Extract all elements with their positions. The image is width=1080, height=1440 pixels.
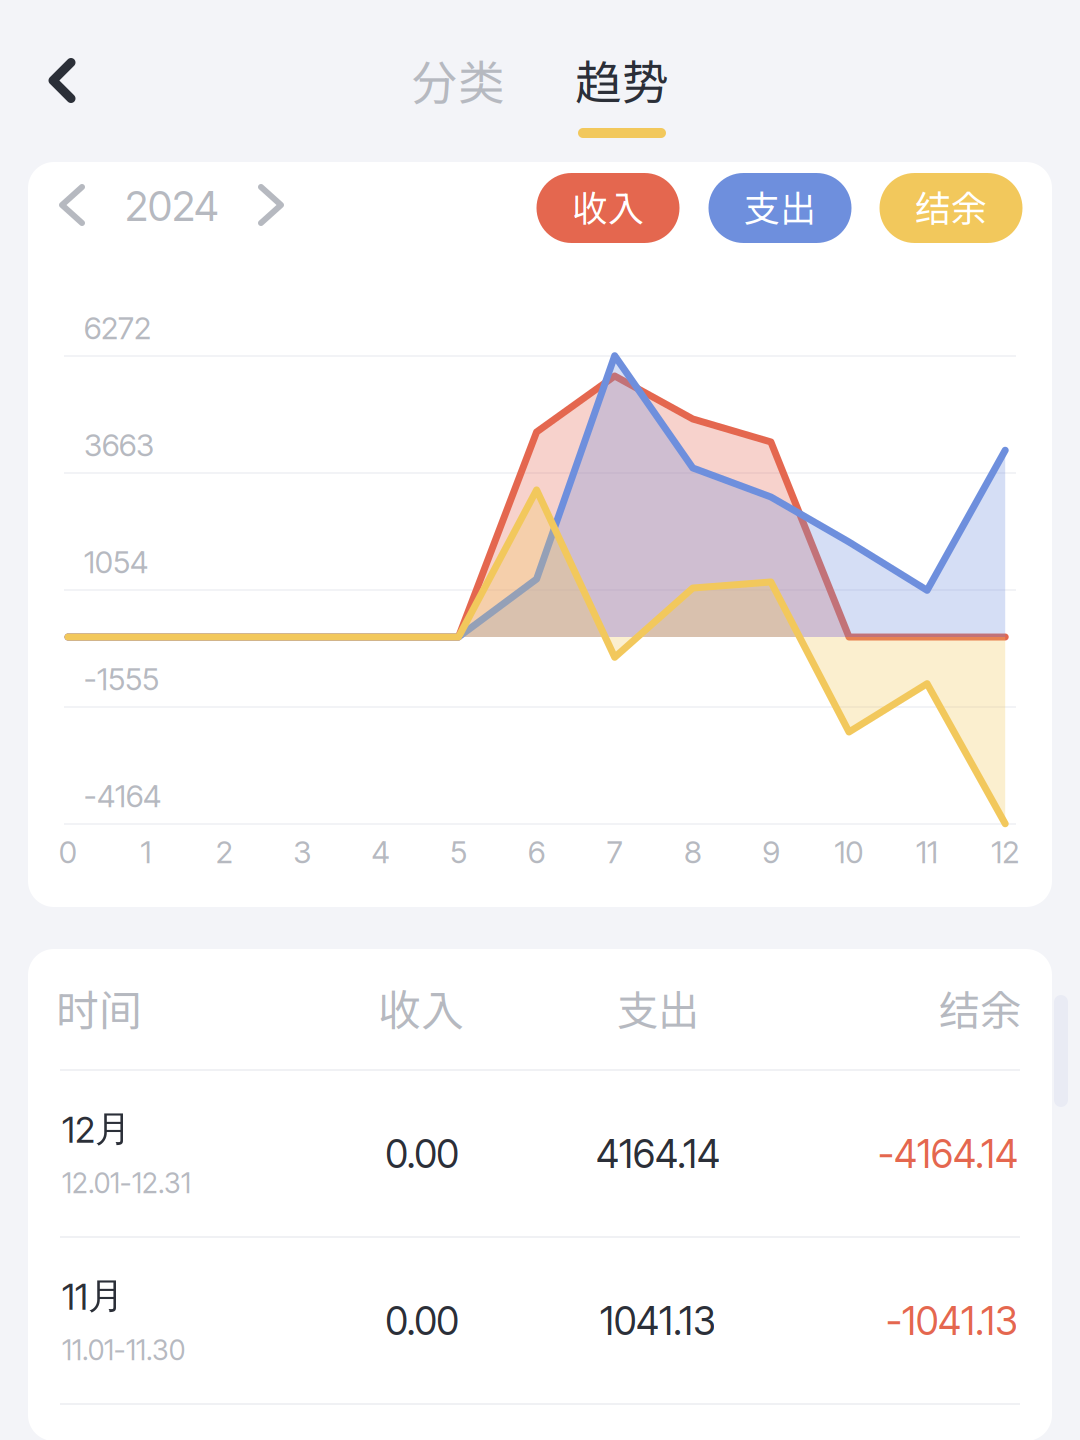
staticText: 3663 [84, 426, 154, 463]
staticText: 8 [684, 833, 701, 870]
staticText: 4 [371, 833, 389, 870]
staticText: 1054 [84, 543, 148, 580]
button[interactable]: Next year [235, 168, 307, 242]
staticText: 12.01-12.31 [62, 1166, 191, 1200]
button[interactable]: 11月 [28, 1237, 1052, 1404]
button[interactable]: 12月 [28, 1070, 1052, 1237]
staticText: 10 [834, 833, 863, 870]
staticText: 结余 [915, 187, 987, 229]
staticText: -1041.13 [886, 1298, 1018, 1344]
staticText: 支出 [617, 986, 699, 1034]
staticText: 1 [141, 833, 152, 870]
staticText: 1041.13 [600, 1298, 716, 1344]
button[interactable]: 支出 [708, 173, 851, 243]
staticText: 0 [59, 833, 77, 870]
staticText: 0.00 [385, 1131, 458, 1177]
staticText: 2 [216, 833, 233, 870]
staticText: 12月 [62, 1106, 131, 1152]
staticText: 6 [528, 833, 545, 870]
staticText: 2024 [125, 181, 219, 231]
button[interactable]: 收入 [536, 173, 679, 243]
staticText: 趋势 [575, 54, 669, 110]
staticText: 时间 [56, 985, 142, 1035]
staticText: 结余 [939, 986, 1021, 1034]
staticText: 7 [607, 833, 623, 870]
staticText: -4164 [84, 777, 161, 814]
staticText: 3 [293, 833, 311, 870]
staticText: 11.01-11.30 [62, 1333, 185, 1367]
staticText: -1555 [84, 660, 159, 697]
staticText: 12 [991, 833, 1019, 870]
staticText: 支出 [744, 187, 816, 229]
staticText: 0.00 [385, 1298, 458, 1344]
staticText: 4164.14 [596, 1131, 720, 1177]
button[interactable]: 结余 [879, 173, 1022, 243]
staticText: 11 [916, 833, 938, 870]
staticText: 分类 [411, 54, 505, 110]
button[interactable]: 趋势 [561, 56, 683, 138]
button[interactable]: Back [12, 30, 112, 130]
staticText: 5 [450, 833, 467, 870]
staticText: 11月 [62, 1273, 124, 1319]
staticText: 收入 [378, 985, 464, 1035]
staticText: -4164.14 [878, 1131, 1018, 1177]
staticText: 9 [762, 833, 779, 870]
staticText: 6272 [84, 309, 151, 346]
staticText: 收入 [572, 187, 644, 229]
button[interactable]: 分类 [397, 56, 519, 138]
button[interactable]: Previous year [36, 168, 108, 242]
